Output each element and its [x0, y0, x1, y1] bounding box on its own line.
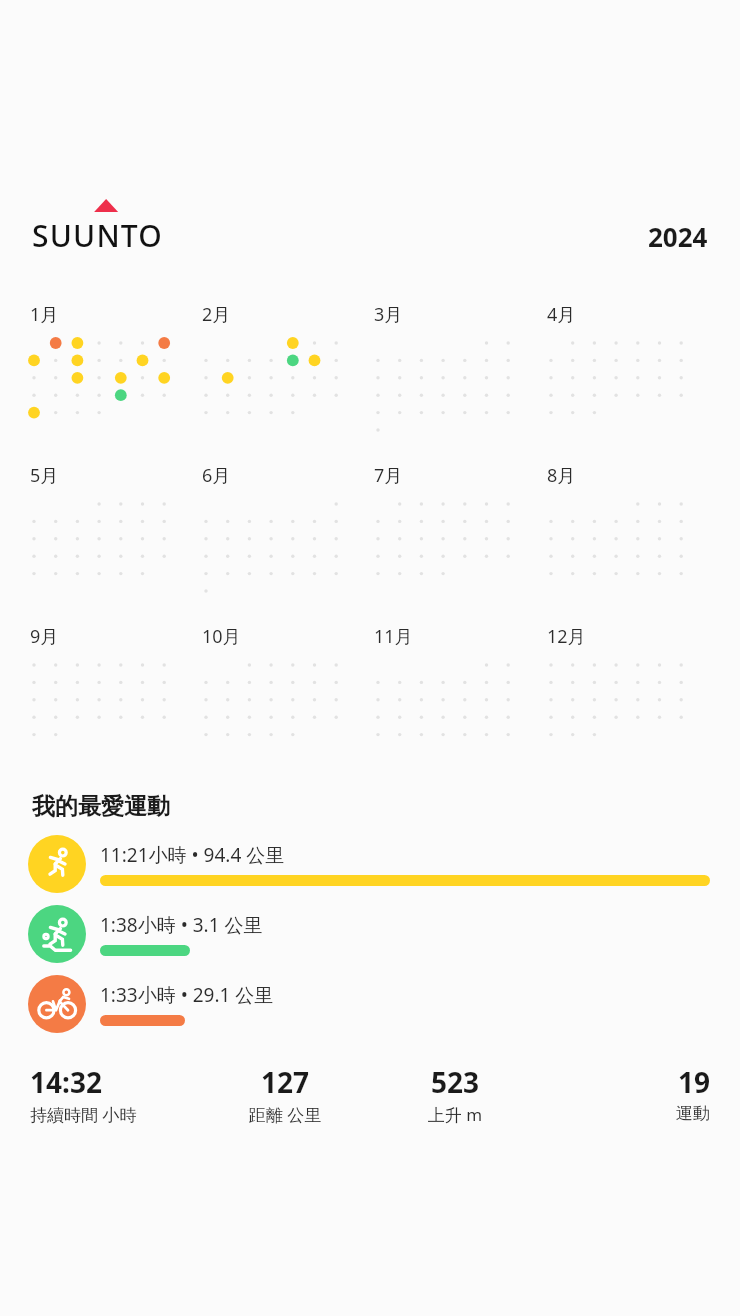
staticText: 6月 — [202, 463, 231, 488]
button[interactable]: 14:32 — [30, 1063, 200, 1126]
staticText: 12月 — [547, 624, 586, 649]
button[interactable]: 9月 — [30, 624, 202, 748]
staticText: 持續時間 小時 — [30, 1103, 200, 1126]
staticText: 2024 — [648, 219, 708, 254]
staticText: 11月 — [374, 624, 413, 649]
staticText: 7月 — [374, 463, 403, 488]
staticText: 8月 — [547, 463, 576, 488]
button[interactable]: 19 — [540, 1063, 710, 1124]
staticText: 上升 m — [370, 1103, 540, 1126]
button[interactable]: 3月 — [374, 302, 547, 443]
button[interactable]: 1月 — [30, 302, 202, 426]
button[interactable]: 10月 — [202, 624, 374, 748]
staticText: 距離 公里 — [200, 1103, 370, 1126]
staticText: 4月 — [547, 302, 576, 327]
staticText: 我的最愛運動 — [32, 792, 170, 821]
staticText: 9月 — [30, 624, 59, 649]
staticText: 523 — [370, 1063, 540, 1101]
button[interactable]: 5月 — [30, 463, 202, 587]
button[interactable]: 7月 — [374, 463, 547, 587]
button[interactable]: Suunto — [32, 196, 168, 256]
button[interactable]: 2月 — [202, 302, 374, 426]
button[interactable]: 4月 — [547, 302, 720, 426]
staticText: SUUNTO — [32, 215, 164, 256]
staticText: 1月 — [30, 302, 59, 327]
staticText: 127 — [200, 1063, 370, 1101]
button[interactable]: 523 — [370, 1063, 540, 1126]
button[interactable]: 1:38小時 • 3.1 公里 — [0, 905, 740, 963]
button[interactable]: 1:33小時 • 29.1 公里 — [0, 975, 740, 1033]
staticText: 1:33小時 • 29.1 公里 — [100, 982, 274, 1008]
staticText: 2月 — [202, 302, 231, 327]
staticText: 1:38小時 • 3.1 公里 — [100, 912, 263, 938]
button[interactable]: 8月 — [547, 463, 720, 587]
staticText: 19 — [540, 1063, 710, 1101]
button[interactable]: 11:21小時 • 94.4 公里 — [0, 835, 740, 893]
button[interactable]: 11月 — [374, 624, 547, 748]
staticText: 5月 — [30, 463, 59, 488]
button[interactable]: 127 — [200, 1063, 370, 1126]
staticText: 11:21小時 • 94.4 公里 — [100, 842, 285, 868]
staticText: 10月 — [202, 624, 241, 649]
staticText: 14:32 — [30, 1063, 200, 1101]
staticText: 運動 — [540, 1103, 710, 1124]
button[interactable]: 6月 — [202, 463, 374, 604]
button[interactable]: 12月 — [547, 624, 720, 748]
staticText: 3月 — [374, 302, 403, 327]
